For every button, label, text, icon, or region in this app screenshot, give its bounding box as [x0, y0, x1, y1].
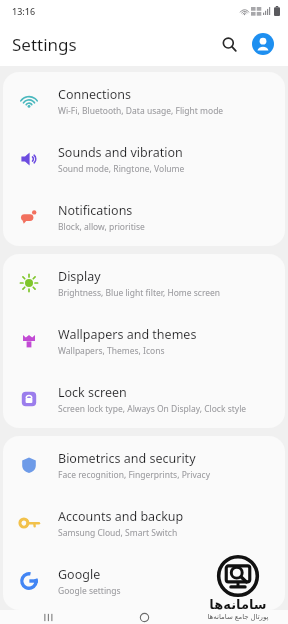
staticText: Notifications — [58, 202, 133, 219]
button[interactable]: Wallpapers and themes — [3, 312, 285, 370]
staticText: Wallpapers, Themes, Icons — [58, 345, 165, 357]
button[interactable]: Search — [214, 29, 244, 59]
staticText: Google settings — [58, 585, 121, 597]
staticText: Google — [58, 566, 101, 583]
staticText: Accounts and backup — [58, 508, 184, 525]
button[interactable]: Biometrics and security — [3, 436, 285, 494]
staticText: Block, allow, prioritise — [58, 221, 145, 233]
staticText: Wallpapers and themes — [58, 326, 197, 343]
button[interactable]: Back — [192, 610, 288, 624]
staticText: Face recognition, Fingerprints, Privacy — [58, 469, 210, 481]
staticText: Biometrics and security — [58, 450, 196, 467]
staticText: Display — [58, 268, 101, 285]
button[interactable]: Google — [3, 552, 285, 610]
staticText: سامانه‌ها — [209, 597, 267, 612]
staticText: Connections — [58, 86, 131, 103]
staticText: Sound mode, Ringtone, Volume — [58, 163, 185, 175]
button[interactable]: Notifications — [3, 188, 285, 246]
button[interactable]: Recent apps — [0, 610, 96, 624]
staticText: پورتال جامع سامانه‌ها — [207, 612, 269, 622]
button[interactable]: Display — [3, 254, 285, 312]
button[interactable]: Connections — [3, 72, 285, 130]
button[interactable]: Home — [96, 610, 192, 624]
button[interactable]: Sounds and vibration — [3, 130, 285, 188]
button[interactable]: Account — [248, 29, 278, 59]
staticText: Brightness, Blue light filter, Home scre… — [58, 287, 221, 299]
button[interactable]: Accounts and backup — [3, 494, 285, 552]
staticText: Sounds and vibration — [58, 144, 183, 161]
staticText: Samsung Cloud, Smart Switch — [58, 527, 178, 539]
staticText: 13:16 — [12, 5, 36, 17]
button[interactable]: Lock screen — [3, 370, 285, 428]
staticText: Wi-Fi, Bluetooth, Data usage, Flight mod… — [58, 105, 224, 117]
staticText: Settings — [12, 33, 77, 56]
staticText: Lock screen — [58, 384, 127, 401]
staticText: Screen lock type, Always On Display, Clo… — [58, 403, 247, 415]
